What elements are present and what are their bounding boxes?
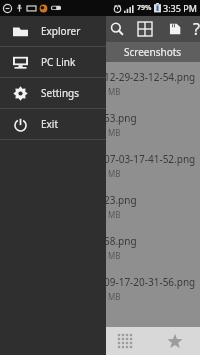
button[interactable]: ? [192, 18, 200, 40]
staticText: MB [108, 168, 121, 179]
staticText: 79% [137, 3, 152, 13]
button[interactable]: rs.. [0, 42, 106, 62]
button[interactable]: Favorites [150, 327, 200, 355]
staticText: 53.png [104, 111, 137, 125]
staticText: MB [108, 250, 121, 261]
staticText: Explorer [21, 21, 69, 37]
button[interactable]: 07-03-17-41-52.png [0, 148, 200, 189]
button[interactable]: Settings [0, 78, 106, 108]
staticText: PC Link [41, 55, 76, 69]
button[interactable]: Explorer [0, 16, 106, 46]
staticText: Exit [41, 117, 59, 131]
button[interactable]: Menu [0, 16, 106, 42]
staticText: 58.png [104, 234, 137, 248]
staticText: 23.png [104, 193, 137, 207]
staticText: Explorer [41, 24, 81, 38]
button[interactable]: Apps [100, 327, 150, 355]
staticText: MB [108, 209, 121, 220]
button[interactable]: PC Link [0, 47, 106, 77]
button[interactable]: 58.png [0, 230, 200, 271]
button[interactable]: Exit [0, 109, 106, 139]
staticText: Screenshots [124, 45, 182, 59]
staticText: ? [193, 18, 200, 40]
staticText: Settings [41, 86, 80, 100]
staticText: MB [108, 291, 121, 302]
staticText: 09-17-20-31-56.png [104, 275, 196, 289]
button[interactable]: Search [106, 18, 128, 40]
button[interactable]: 53.png [0, 107, 200, 148]
button[interactable]: 09-17-20-31-56.png [0, 271, 200, 312]
button[interactable]: Screenshots [106, 42, 200, 62]
staticText: MB [108, 127, 121, 138]
button[interactable]: 12-29-23-12-54.png [0, 66, 200, 107]
staticText: MB [108, 86, 121, 97]
staticText: 3:35 PM [163, 2, 197, 14]
button[interactable]: 23.png [0, 189, 200, 230]
button[interactable]: Grid view [134, 18, 156, 40]
staticText: 12-29-23-12-54.png [104, 70, 196, 84]
button[interactable]: Storage [164, 18, 186, 40]
staticText: 07-03-17-41-52.png [104, 152, 196, 166]
